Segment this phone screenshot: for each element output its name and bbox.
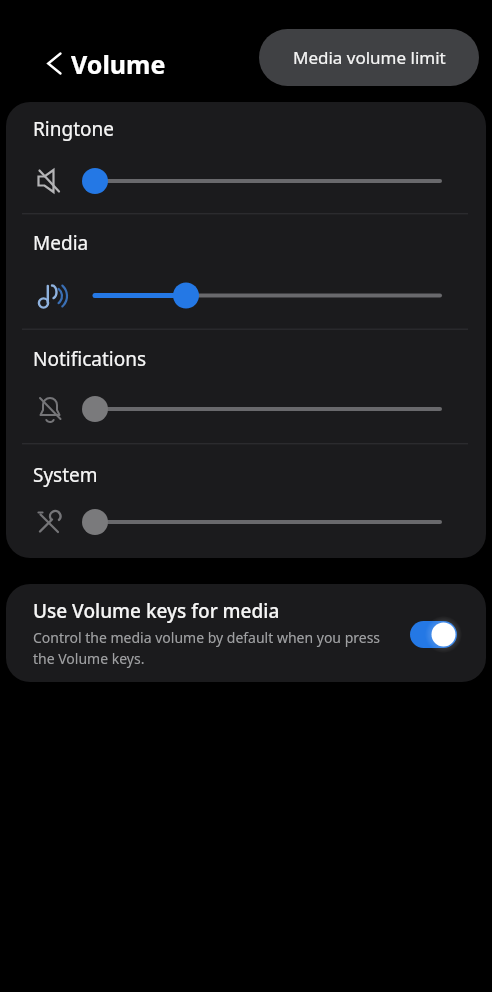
staticText: Use Volume keys for media	[33, 598, 280, 624]
button[interactable]: Use Volume keys for media	[6, 584, 486, 682]
button[interactable]: Media volume limit	[259, 29, 479, 86]
staticText: Volume	[71, 47, 166, 81]
staticText: Media	[33, 230, 89, 256]
button[interactable]	[410, 621, 457, 648]
staticText: Ringtone	[33, 116, 114, 142]
staticText: Control the media volume by default when…	[33, 628, 381, 647]
button[interactable]	[37, 47, 71, 79]
staticText: Media volume limit	[293, 46, 446, 69]
staticText: System	[33, 462, 98, 488]
staticText: Notifications	[33, 346, 147, 372]
staticText: the Volume keys.	[33, 649, 145, 668]
